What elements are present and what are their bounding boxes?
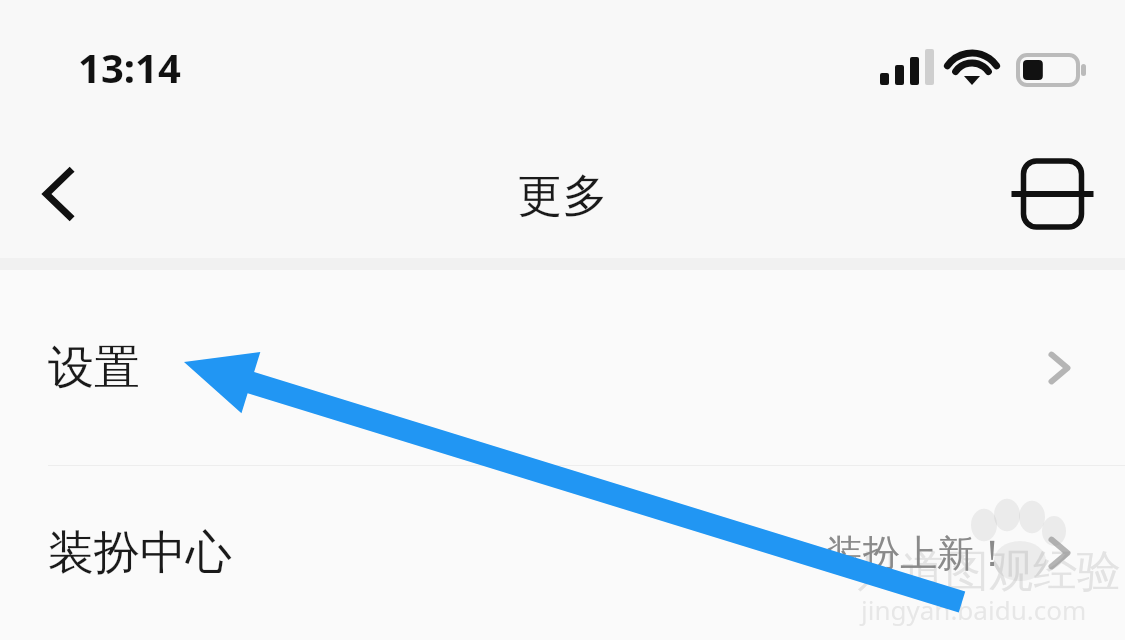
staticText: 13:14 xyxy=(78,40,181,94)
staticText: 装扮中心 xyxy=(48,524,232,582)
staticText: 更多 xyxy=(0,168,1125,225)
staticText: 装扮上新！ xyxy=(826,530,1011,577)
button[interactable]: Back xyxy=(20,154,100,234)
staticText: jingyan.baidu.com xyxy=(861,592,1087,627)
staticText: 设置 xyxy=(48,339,140,397)
staticText: 只道图观经验 xyxy=(857,544,1121,599)
button[interactable]: Split screen xyxy=(1005,158,1100,230)
button[interactable]: 装扮中心 xyxy=(0,466,1125,640)
button[interactable]: 设置 xyxy=(0,270,1125,465)
